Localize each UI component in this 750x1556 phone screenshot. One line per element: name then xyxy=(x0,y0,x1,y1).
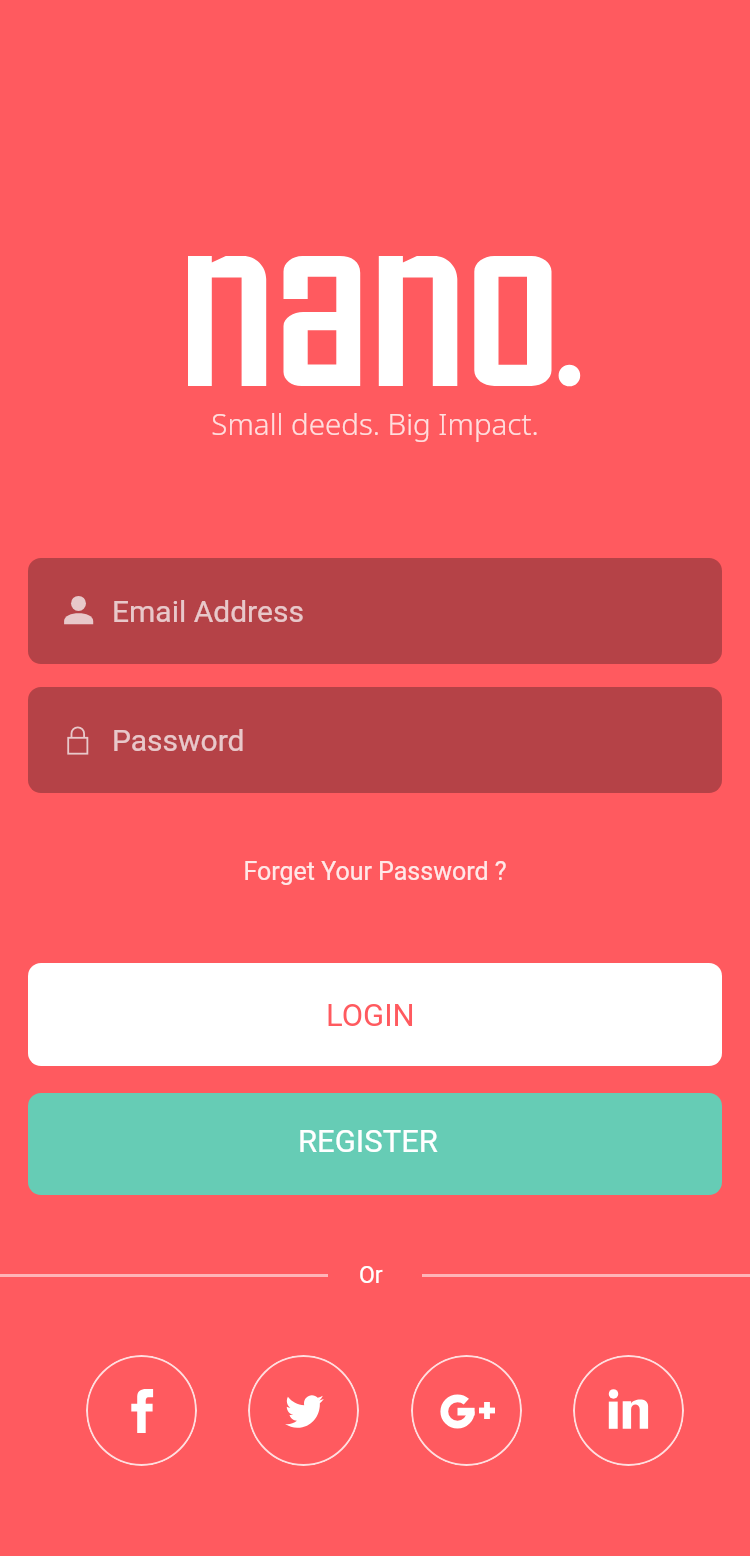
staticText: Password xyxy=(112,723,245,758)
button[interactable]: LinkedIn xyxy=(573,1355,684,1466)
button[interactable]: Google Plus xyxy=(411,1355,522,1466)
button[interactable]: LOGIN xyxy=(28,963,722,1066)
staticText: Small deeds. Big Impact. xyxy=(211,403,539,443)
staticText: REGISTER xyxy=(298,1123,438,1159)
button[interactable]: Forget Your Password ? xyxy=(233,851,517,892)
staticText: Or xyxy=(359,1262,383,1289)
staticText: Forget Your Password ? xyxy=(243,857,507,886)
staticText: Email Address xyxy=(112,594,304,629)
button[interactable]: Twitter xyxy=(248,1355,359,1466)
button[interactable]: Password xyxy=(28,687,722,793)
button[interactable]: REGISTER xyxy=(28,1093,722,1195)
button[interactable]: Email Address xyxy=(28,558,722,664)
staticText: LOGIN xyxy=(326,997,415,1033)
button[interactable]: Facebook xyxy=(86,1355,197,1466)
